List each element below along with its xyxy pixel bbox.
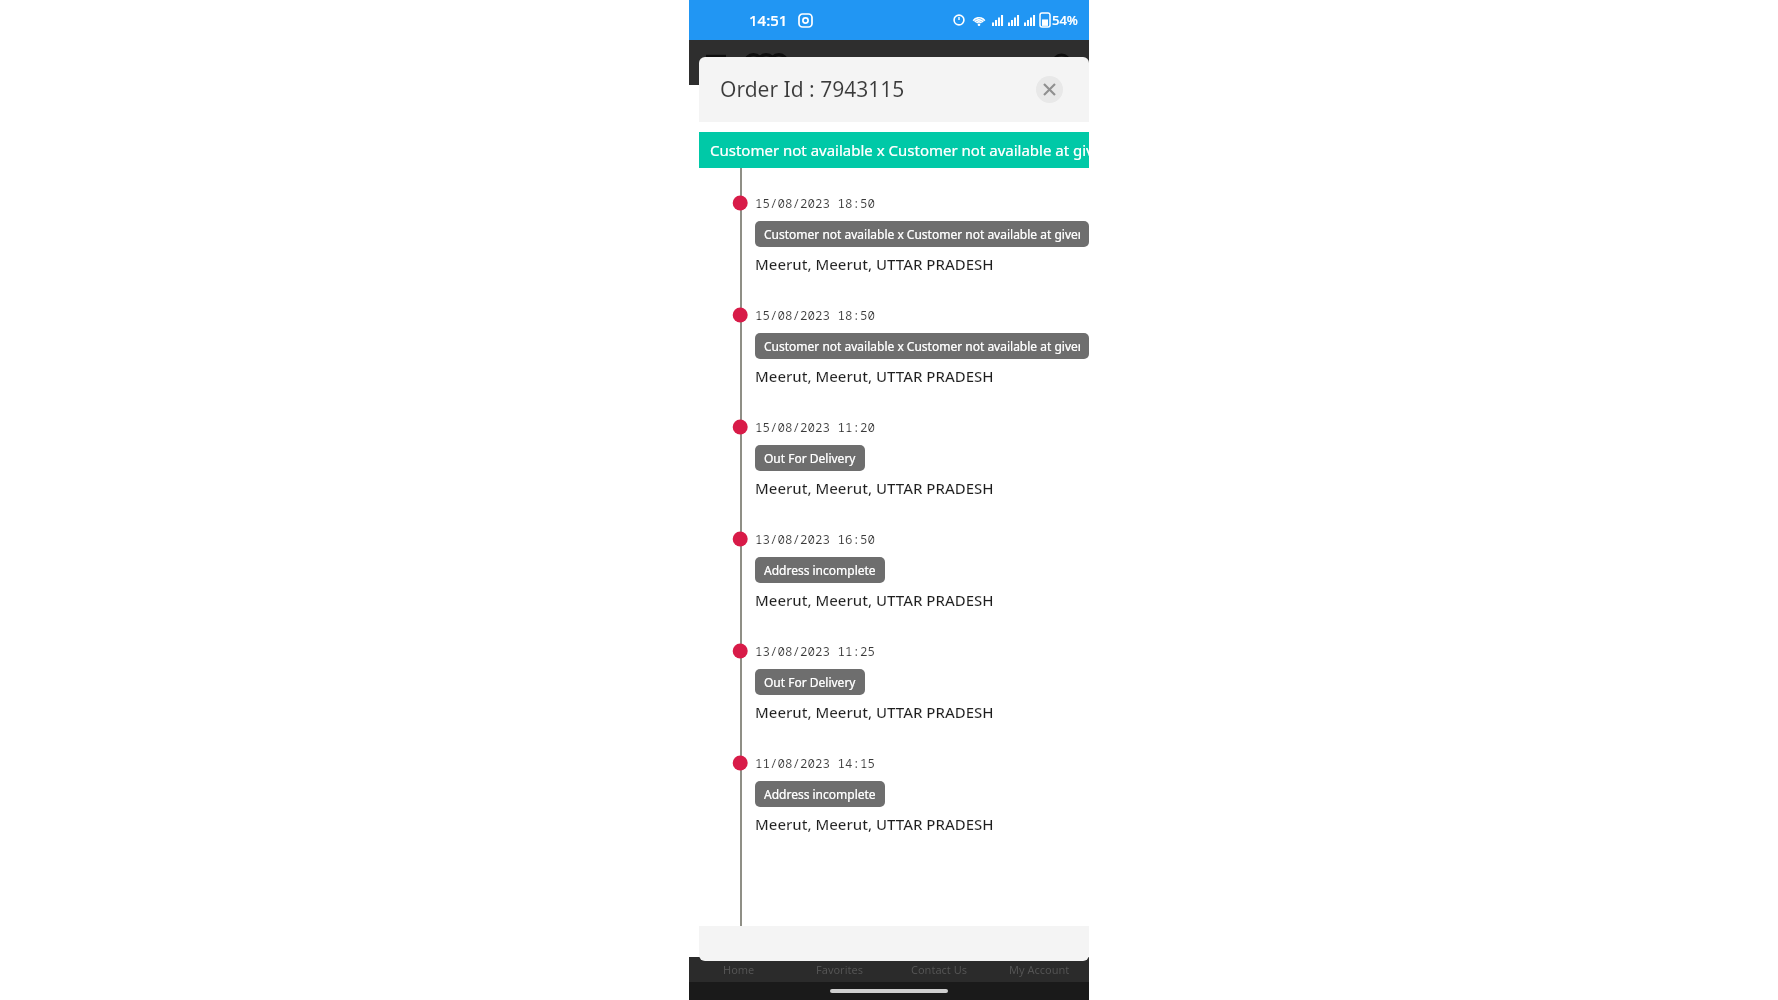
staticText: Customer not available x Customer not av…: [764, 226, 1080, 242]
button[interactable]: Cart: [1047, 49, 1075, 77]
button[interactable]: Contact Us: [889, 957, 989, 982]
staticText: 14:51: [749, 10, 788, 30]
staticText: 11/08/2023 14:15: [755, 755, 876, 772]
button[interactable]: Home: [689, 957, 789, 982]
staticText: Out For Delivery: [764, 674, 856, 690]
staticText: Contact Us: [911, 962, 967, 977]
staticText: Address incomplete: [764, 562, 876, 578]
staticText: Meerut, Meerut, UTTAR PRADESH: [755, 478, 994, 498]
staticText: Address incomplete: [764, 786, 876, 802]
button[interactable]: Close: [1036, 76, 1063, 103]
staticText: Customer not available x Customer not av…: [710, 140, 1089, 160]
staticText: 54%: [1052, 11, 1078, 29]
staticText: Meerut, Meerut, UTTAR PRADESH: [755, 814, 994, 834]
staticText: 13/08/2023 16:50: [755, 531, 876, 548]
button[interactable]: My Account: [989, 957, 1089, 982]
staticText: Home: [723, 962, 755, 977]
staticText: Meerut, Meerut, UTTAR PRADESH: [755, 366, 994, 386]
staticText: Favorites: [816, 962, 863, 977]
button[interactable]: Menu: [703, 50, 729, 76]
staticText: Meerut, Meerut, UTTAR PRADESH: [755, 254, 994, 274]
staticText: Order Id : 7943115: [720, 75, 905, 104]
staticText: My Account: [1009, 962, 1070, 977]
staticText: Out For Delivery: [764, 450, 856, 466]
staticText: Meerut, Meerut, UTTAR PRADESH: [755, 590, 994, 610]
staticText: Customer not available x Customer not av…: [764, 338, 1080, 354]
staticText: 15/08/2023 18:50: [755, 195, 876, 212]
button[interactable]: Favorites: [789, 957, 889, 982]
staticText: 13/08/2023 11:25: [755, 643, 876, 660]
staticText: 15/08/2023 18:50: [755, 307, 876, 324]
staticText: 15/08/2023 11:20: [755, 419, 876, 436]
staticText: Meerut, Meerut, UTTAR PRADESH: [755, 702, 994, 722]
